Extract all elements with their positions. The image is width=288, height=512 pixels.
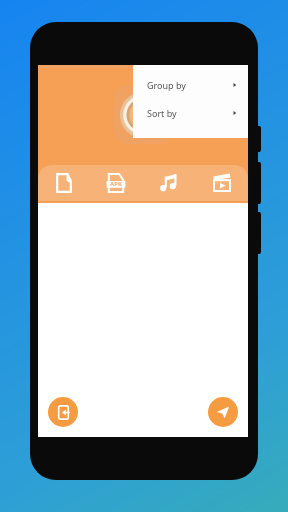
button[interactable]: Apps <box>90 165 142 201</box>
button[interactable]: Group by <box>133 71 248 99</box>
button[interactable]: Send <box>208 397 238 427</box>
button[interactable]: Sort by <box>133 99 248 127</box>
staticText: Sort by <box>147 107 177 119</box>
staticText: Group by <box>147 79 186 91</box>
staticText: APK <box>110 180 122 188</box>
button[interactable]: Music <box>142 165 195 201</box>
button[interactable]: Videos <box>195 165 248 201</box>
button[interactable]: Receive <box>48 397 78 427</box>
button[interactable]: Documents <box>38 165 90 201</box>
